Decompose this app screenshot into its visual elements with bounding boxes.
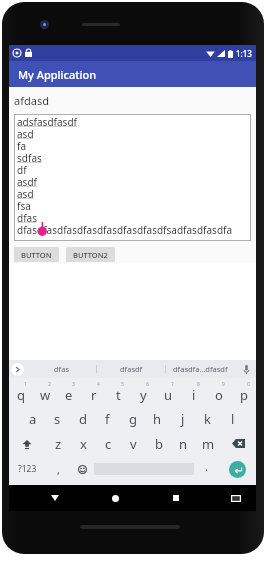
button[interactable]: adsfasdfasdf xyxy=(14,114,251,241)
button[interactable]: dfas xyxy=(27,360,96,378)
staticText: , xyxy=(57,462,60,477)
staticText: z xyxy=(55,435,62,453)
button[interactable]: BUTTON2 xyxy=(66,247,115,262)
staticText: fsa xyxy=(17,199,31,211)
staticText: ?123 xyxy=(18,463,37,475)
button[interactable]: 5 xyxy=(106,381,131,406)
button[interactable]: c xyxy=(96,431,121,456)
button[interactable]: Recents xyxy=(166,488,186,508)
button[interactable]: dfasdfa…dfasdf xyxy=(166,360,234,378)
button[interactable]: Enter xyxy=(229,461,246,478)
staticText: p xyxy=(240,386,248,404)
staticText: afdasd xyxy=(14,93,49,108)
button[interactable]: 1 xyxy=(9,381,33,406)
staticText: u xyxy=(164,386,173,404)
staticText: g xyxy=(129,410,137,428)
staticText: k xyxy=(204,410,211,428)
button[interactable]: Home xyxy=(105,488,125,508)
button[interactable]: 0 xyxy=(231,381,256,406)
staticText: w xyxy=(40,386,51,404)
button[interactable]: 4 xyxy=(81,381,106,406)
staticText: h xyxy=(153,410,162,428)
button[interactable]: dfasdf xyxy=(97,360,165,378)
button[interactable]: x xyxy=(71,431,96,456)
button[interactable]: BUTTON xyxy=(14,247,59,262)
staticText: fa xyxy=(17,139,27,151)
staticText: adsfasdfasdf xyxy=(17,115,77,127)
staticText: 6 xyxy=(146,381,149,388)
staticText: q xyxy=(17,386,25,404)
staticText: b xyxy=(155,435,163,453)
button[interactable]: f xyxy=(95,406,120,431)
button[interactable]: j xyxy=(170,406,195,431)
button[interactable]: 6 xyxy=(131,381,156,406)
staticText: e xyxy=(65,386,73,404)
staticText: dfasdf xyxy=(120,364,143,374)
staticText: a xyxy=(29,410,37,428)
button[interactable]: 8 xyxy=(181,381,206,406)
staticText: asdf xyxy=(17,175,37,187)
staticText: 2 xyxy=(48,381,51,388)
staticText: t xyxy=(116,386,121,404)
button[interactable]: h xyxy=(145,406,170,431)
staticText: 4 xyxy=(97,381,100,388)
staticText: asd xyxy=(17,187,34,199)
staticText: My Application xyxy=(18,67,97,82)
button[interactable]: 3 xyxy=(57,381,81,406)
button[interactable]: Keyboard xyxy=(226,488,246,508)
button[interactable]: v xyxy=(121,431,146,456)
button[interactable]: ?123 xyxy=(9,456,46,482)
button[interactable]: 7 xyxy=(156,381,181,406)
staticText: d xyxy=(79,410,87,428)
button[interactable]: m xyxy=(196,431,221,456)
button[interactable]: b xyxy=(146,431,171,456)
staticText: r xyxy=(91,386,97,404)
staticText: 3 xyxy=(72,381,75,388)
staticText: . xyxy=(205,459,208,474)
staticText: dfas xyxy=(54,364,69,374)
staticText: x xyxy=(80,435,87,453)
staticText: 1:13 xyxy=(236,48,252,59)
button[interactable]: . xyxy=(194,456,218,482)
button[interactable]: z xyxy=(45,431,71,456)
staticText: BUTTON2 xyxy=(73,250,108,260)
staticText: s xyxy=(54,410,61,428)
staticText: asd xyxy=(17,127,34,139)
staticText: dfasdfasdfasdfasdfasdfasdfasdfsadfasdfas… xyxy=(17,223,233,235)
staticText: dfasdfa…dfasdf xyxy=(173,364,228,374)
button[interactable]: Emoji xyxy=(70,456,94,482)
staticText: v xyxy=(130,435,137,453)
button[interactable]: n xyxy=(171,431,196,456)
button[interactable]: g xyxy=(120,406,145,431)
button[interactable]: More suggestions xyxy=(11,363,24,376)
staticText: 5 xyxy=(121,381,124,388)
button[interactable]: Backspace xyxy=(221,431,256,456)
staticText: j xyxy=(181,410,185,428)
staticText: l xyxy=(231,410,235,428)
staticText: i xyxy=(192,386,196,404)
staticText: BUTTON xyxy=(21,250,52,260)
staticText: 8 xyxy=(197,381,200,388)
button[interactable]: Shift xyxy=(9,431,45,456)
staticText: dfas xyxy=(17,211,37,223)
staticText: n xyxy=(179,435,188,453)
staticText: 1 xyxy=(24,381,27,388)
staticText: y xyxy=(140,386,147,404)
button[interactable]: 2 xyxy=(33,381,57,406)
button[interactable]: 9 xyxy=(206,381,231,406)
button[interactable]: Back xyxy=(45,488,65,508)
staticText: df xyxy=(17,163,27,175)
staticText: o xyxy=(215,386,223,404)
button[interactable]: l xyxy=(220,406,245,431)
button[interactable]: d xyxy=(70,406,95,431)
button[interactable]: Voice input xyxy=(240,363,252,375)
staticText: f xyxy=(105,410,110,428)
button[interactable]: a xyxy=(20,406,45,431)
button[interactable]: k xyxy=(195,406,220,431)
staticText: 9 xyxy=(222,381,225,388)
staticText: sdfas xyxy=(17,151,42,163)
button[interactable]: , xyxy=(46,456,70,482)
button[interactable]: s xyxy=(45,406,70,431)
staticText: m xyxy=(202,435,215,453)
